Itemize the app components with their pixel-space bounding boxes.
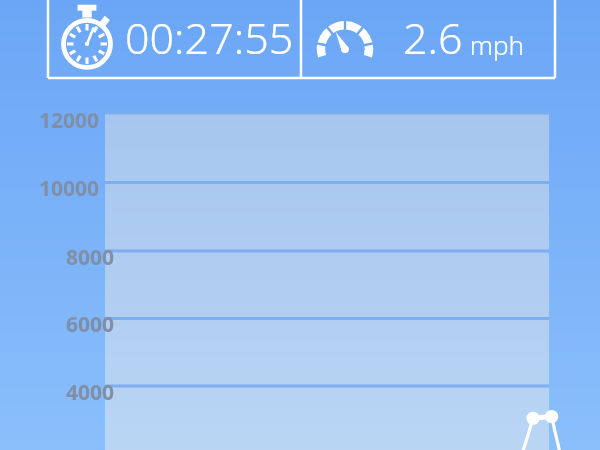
button[interactable]: Speed	[302, 0, 554, 78]
staticText: mph	[463, 27, 525, 62]
staticText: 2.6	[403, 8, 463, 67]
staticText: 8000	[66, 243, 115, 272]
staticText: 6000	[66, 310, 115, 339]
staticText: 4000	[66, 378, 115, 407]
staticText: 00:27:55	[125, 8, 294, 67]
staticText: 12000	[39, 106, 100, 135]
staticText: 2000	[66, 446, 115, 450]
button[interactable]: Elapsed time	[49, 0, 300, 78]
other: Speed	[315, 11, 375, 69]
button[interactable]: Route	[518, 406, 576, 450]
staticText: 10000	[39, 174, 100, 203]
other: Elapsed time	[59, 8, 115, 70]
